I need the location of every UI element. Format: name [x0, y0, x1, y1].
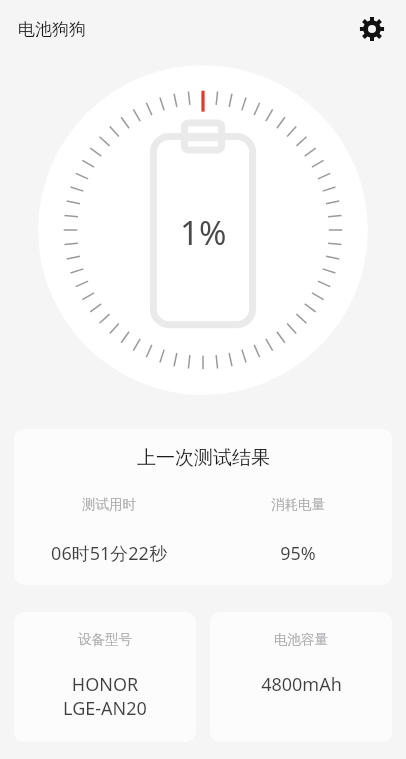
- staticText: 电池容量: [274, 631, 328, 648]
- button[interactable]: Settings: [350, 7, 394, 51]
- staticText: 06时51分22秒: [51, 541, 167, 566]
- staticText: 测试用时: [82, 496, 136, 513]
- staticText: 4800mAh: [261, 672, 342, 697]
- staticText: 消耗电量: [271, 496, 325, 513]
- staticText: 95%: [280, 541, 316, 566]
- staticText: 设备型号: [78, 631, 132, 648]
- button[interactable]: 设备型号: [14, 612, 196, 742]
- staticText: HONOR LGE-AN20: [63, 672, 147, 720]
- staticText: 电池狗狗: [18, 19, 86, 40]
- button[interactable]: 上一次测试结果: [14, 429, 392, 585]
- button[interactable]: 电池容量: [210, 612, 392, 742]
- staticText: 1%: [180, 210, 227, 255]
- staticText: 上一次测试结果: [137, 446, 270, 470]
